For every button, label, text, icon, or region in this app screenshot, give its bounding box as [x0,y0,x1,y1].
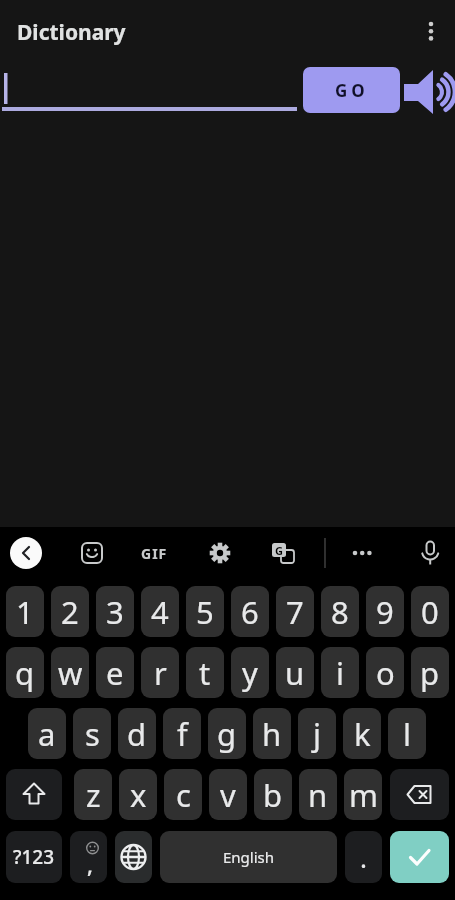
staticText: Dictionary [17,18,126,47]
staticText: GIF [141,544,168,563]
staticText: 4 [151,591,169,633]
button[interactable]: y [231,647,269,698]
staticText: e [106,652,124,694]
staticText: G [275,543,283,558]
staticText: y [242,652,258,694]
staticText: q [15,652,35,694]
button[interactable]: r [141,647,179,698]
button[interactable] [346,537,378,569]
button[interactable]: m [344,769,382,820]
staticText: z [86,774,101,816]
staticText: , [87,849,94,879]
button[interactable] [76,537,108,569]
staticText: t [199,652,211,694]
staticText: r [154,652,167,694]
button[interactable]: v [209,769,247,820]
button[interactable] [390,831,449,883]
staticText: c [176,774,191,816]
button[interactable]: q [6,647,44,698]
button[interactable]: f [163,708,201,759]
button[interactable]: n [299,769,337,820]
button[interactable]: a [28,708,66,759]
staticText: a [38,713,56,755]
staticText: f [177,713,188,755]
staticText: 3 [106,591,124,633]
staticText: 1 [16,591,34,633]
staticText: b [263,774,283,816]
button[interactable]: 9 [366,586,404,637]
button[interactable]: l [388,708,426,759]
button[interactable] [267,537,299,569]
button[interactable]: . [345,831,382,883]
button[interactable]: z [74,769,112,820]
button[interactable]: i [321,647,359,698]
button[interactable]: t [186,647,224,698]
button[interactable]: o [366,647,404,698]
staticText: 9 [376,591,394,633]
button[interactable]: e [96,647,134,698]
staticText: x [130,774,147,816]
button[interactable] [414,14,448,48]
staticText: g [217,713,237,755]
button[interactable]: 1 [6,586,44,637]
button[interactable]: d [118,708,156,759]
staticText: h [262,713,282,755]
button[interactable]: p [411,647,449,698]
button[interactable]: u [276,647,314,698]
staticText: ?123 [13,844,55,870]
staticText: GO [335,79,369,102]
button[interactable] [390,769,449,820]
button[interactable]: 8 [321,586,359,637]
staticText: o [376,652,395,694]
button[interactable]: GO [303,67,400,113]
staticText: p [420,652,440,694]
button[interactable]: x [119,769,157,820]
button[interactable]: 0 [411,586,449,637]
button[interactable] [115,831,152,883]
staticText: . [360,840,367,875]
staticText: 7 [286,591,304,633]
staticText: 6 [241,591,259,633]
button[interactable]: , [70,831,107,883]
button[interactable] [412,537,444,569]
staticText: 2 [61,591,79,633]
staticText: k [354,713,371,755]
button[interactable]: s [73,708,111,759]
button[interactable]: 5 [186,586,224,637]
staticText: 8 [331,591,349,633]
staticText: 5 [196,591,214,633]
button[interactable] [0,67,300,113]
staticText: n [308,774,328,816]
button[interactable]: b [254,769,292,820]
staticText: w [58,652,83,694]
button[interactable]: 4 [141,586,179,637]
button[interactable]: w [51,647,89,698]
staticText: j [313,713,321,755]
button[interactable]: 3 [96,586,134,637]
staticText: d [127,713,147,755]
staticText: u [285,652,305,694]
button[interactable] [204,537,236,569]
button[interactable]: 6 [231,586,269,637]
button[interactable]: h [253,708,291,759]
staticText: 0 [421,591,439,633]
button[interactable] [10,537,42,569]
button[interactable]: 2 [51,586,89,637]
staticText: v [220,774,236,816]
button[interactable]: c [164,769,202,820]
staticText: s [85,713,100,755]
staticText: m [349,774,378,816]
button[interactable]: k [343,708,381,759]
button[interactable]: ?123 [6,831,62,883]
staticText: English [223,847,275,867]
button[interactable]: English [160,831,337,883]
button[interactable]: 7 [276,586,314,637]
button[interactable]: j [298,708,336,759]
button[interactable] [6,769,62,820]
button[interactable] [402,62,455,115]
staticText: i [336,652,344,694]
staticText: l [403,713,411,755]
button[interactable]: g [208,708,246,759]
button[interactable]: GIF [136,537,172,569]
